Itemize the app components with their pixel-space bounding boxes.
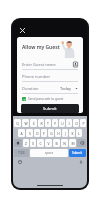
staticText: F [43, 131, 45, 136]
staticText: X [32, 141, 34, 146]
staticText: Q [16, 121, 19, 126]
button[interactable]: X [30, 139, 36, 147]
button[interactable]: ?123 [14, 149, 29, 157]
staticText: I [68, 121, 70, 126]
button[interactable]: V [45, 139, 52, 147]
button[interactable]: Shift [14, 139, 22, 147]
button[interactable]: K [69, 129, 75, 137]
staticText: G [50, 131, 53, 136]
button[interactable]: Q [14, 119, 21, 127]
staticText: Submit [43, 106, 57, 111]
staticText: M [71, 141, 75, 146]
button[interactable]: B [53, 139, 60, 147]
staticText: Send passcode to guest [28, 97, 64, 101]
staticText: E [33, 121, 35, 126]
button[interactable]: H [55, 129, 61, 137]
staticText: Z [25, 141, 27, 146]
button[interactable]: Submit [21, 104, 79, 113]
button[interactable]: N [61, 139, 68, 147]
button[interactable]: Backspace [77, 139, 86, 147]
button[interactable]: U [59, 119, 65, 127]
staticText: U [61, 121, 64, 126]
button[interactable]: L [76, 129, 82, 137]
button[interactable]: Enter Guest name [17, 58, 83, 70]
staticText: C [39, 141, 42, 146]
button[interactable]: G [48, 129, 54, 137]
button[interactable]: Emoji [17, 159, 22, 164]
button[interactable]: Voice input [78, 159, 83, 164]
staticText: H [57, 131, 60, 136]
button[interactable]: Close [18, 26, 27, 35]
button[interactable]: T [45, 119, 51, 127]
button[interactable]: Duration [17, 82, 83, 94]
staticText: O [75, 121, 78, 126]
button[interactable]: W [22, 119, 29, 127]
staticText: Submit [72, 151, 83, 155]
staticText: V [47, 141, 50, 146]
button[interactable]: Submit [69, 149, 86, 157]
staticText: Today [60, 86, 72, 91]
button[interactable]: R [38, 119, 44, 127]
button[interactable]: D [34, 129, 40, 137]
staticText: P [82, 121, 85, 126]
button[interactable]: M [69, 139, 76, 147]
button[interactable]: Pick contact [73, 62, 78, 67]
button[interactable]: P [80, 119, 86, 127]
staticText: Allow my Guest [22, 44, 60, 51]
staticText: W [24, 121, 28, 126]
staticText: Duration [22, 86, 39, 91]
staticText: K [71, 131, 74, 136]
staticText: Y [54, 121, 56, 126]
button[interactable]: A [18, 129, 25, 137]
button[interactable]: S [26, 129, 33, 137]
button[interactable]: F [41, 129, 47, 137]
button[interactable]: space [30, 149, 68, 157]
staticText: T [47, 121, 49, 126]
staticText: B [55, 141, 58, 146]
staticText: Phone number [22, 74, 51, 79]
button[interactable]: O [73, 119, 79, 127]
staticText: space [45, 151, 54, 155]
button[interactable]: C [37, 139, 44, 147]
button[interactable]: J [62, 129, 68, 137]
staticText: A [20, 131, 23, 136]
staticText: J [65, 131, 66, 136]
staticText: Enter Guest name [22, 62, 56, 67]
button[interactable]: E [30, 119, 37, 127]
staticText: N [63, 141, 66, 146]
staticText: R [40, 121, 43, 126]
staticText: ?123 [18, 151, 25, 155]
button[interactable]: Send passcode to guest [22, 97, 83, 101]
button[interactable]: Phone number [17, 70, 83, 82]
staticText: L [78, 131, 80, 136]
button[interactable]: Z [23, 139, 29, 147]
staticText: S [29, 131, 31, 136]
button[interactable]: I [66, 119, 72, 127]
staticText: D [36, 131, 39, 136]
button[interactable]: Y [52, 119, 58, 127]
